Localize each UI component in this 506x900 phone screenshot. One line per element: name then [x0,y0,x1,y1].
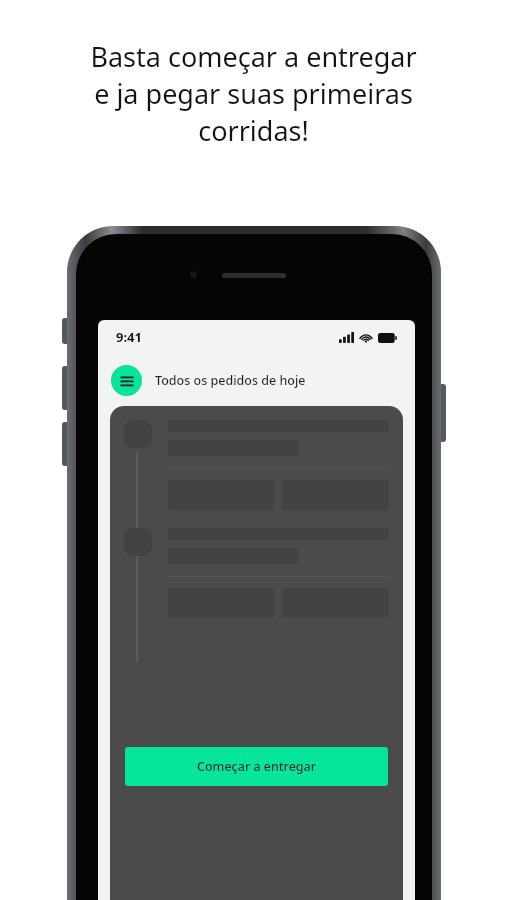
button[interactable]: Menu [111,365,142,396]
staticText: Basta começar a entregar e ja pegar suas… [90,38,417,149]
button[interactable]: Começar a entregar [125,747,388,786]
staticText: Começar a entregar [197,758,317,775]
staticText: Todos os pedidos de hoje [155,372,306,389]
staticText: 9:41 [116,328,142,346]
